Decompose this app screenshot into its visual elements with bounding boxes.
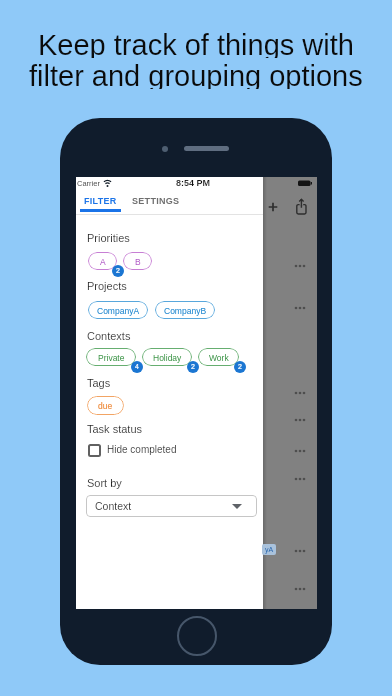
staticText: 2 [116,267,120,275]
button[interactable] [177,616,217,656]
button[interactable]: CompanyB [155,301,215,319]
staticText: CompanyB [164,306,207,315]
button[interactable] [267,201,279,213]
staticText: 2 [238,363,242,371]
button[interactable]: due [87,396,124,415]
button[interactable]: Context [86,495,257,517]
staticText: Keep track of things with [38,29,354,58]
staticText: Task status [87,423,143,435]
button[interactable]: B [123,252,152,270]
staticText: Private [98,353,125,362]
staticText: CompanyA [97,306,140,315]
staticText: 2 [191,363,195,371]
button[interactable] [88,444,101,457]
staticText: Sort by [87,477,122,489]
staticText: FILTER [84,196,117,206]
staticText: Holiday [153,353,182,362]
staticText: Contexts [87,330,131,342]
button[interactable] [295,198,308,216]
button[interactable]: Private [86,348,136,366]
button[interactable]: A [88,252,117,270]
staticText: filter and grouping options [29,60,363,89]
staticText: Hide completed [107,444,177,455]
staticText: A [100,257,106,266]
staticText: Tags [87,377,111,389]
button[interactable] [76,191,169,213]
staticText: Context [95,500,132,512]
staticText: due [98,401,113,410]
button[interactable]: CompanyA [88,301,148,319]
staticText: Priorities [87,232,130,244]
staticText: Work [209,353,229,362]
staticText: 8:54 PM [176,178,211,188]
staticText: SETTINGS [132,196,180,206]
staticText: 4 [135,363,139,371]
button[interactable]: Holiday [142,348,192,366]
staticText: B [135,257,141,266]
staticText: Projects [87,280,127,292]
button[interactable]: Work [198,348,239,366]
button[interactable] [169,191,263,213]
staticText: Carrier [77,179,100,187]
staticText: yA [265,546,274,554]
